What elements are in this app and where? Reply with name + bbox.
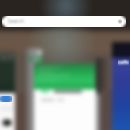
staticText: cafe — [118, 59, 129, 66]
button[interactable]: Install — [0, 96, 12, 102]
button[interactable]: Search — [2, 16, 126, 27]
button[interactable]: Voice search — [117, 18, 123, 25]
staticText: Search — [8, 18, 24, 25]
